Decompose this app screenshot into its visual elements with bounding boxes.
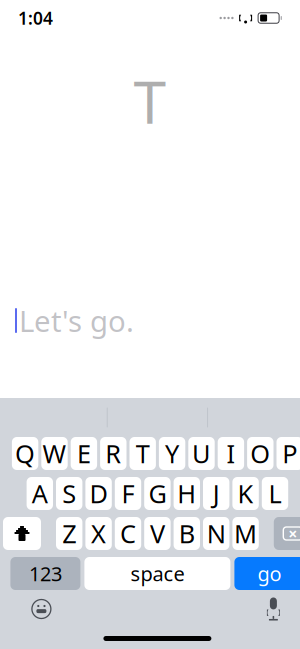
staticText: V bbox=[150, 517, 165, 550]
button[interactable]: M bbox=[232, 517, 259, 550]
button[interactable]: G bbox=[144, 477, 171, 510]
staticText: X bbox=[91, 517, 106, 550]
staticText: × bbox=[288, 523, 297, 544]
staticText: N bbox=[207, 517, 226, 550]
button[interactable]: W bbox=[41, 437, 68, 470]
button[interactable]: N bbox=[203, 517, 229, 550]
button[interactable]: H bbox=[174, 477, 200, 510]
staticText: 123 bbox=[29, 560, 62, 587]
staticText: T bbox=[133, 62, 166, 140]
staticText: A bbox=[32, 477, 48, 510]
button[interactable]: L bbox=[262, 477, 288, 510]
button[interactable]: 123 bbox=[10, 557, 80, 590]
staticText: W bbox=[42, 437, 66, 470]
button[interactable]: E bbox=[71, 437, 97, 470]
button[interactable]: B bbox=[174, 517, 200, 550]
staticText: M bbox=[234, 517, 257, 550]
staticText: T bbox=[136, 437, 150, 470]
button[interactable]: space bbox=[84, 557, 230, 590]
button[interactable]: Emoji bbox=[24, 592, 58, 626]
button[interactable]: go bbox=[234, 557, 300, 590]
staticText: Q bbox=[15, 437, 35, 470]
button[interactable]: D bbox=[85, 477, 112, 510]
staticText: I bbox=[226, 437, 235, 470]
button[interactable]: K bbox=[232, 477, 259, 510]
button[interactable]: C bbox=[115, 517, 141, 550]
button[interactable]: A bbox=[27, 477, 53, 510]
button[interactable]: Z bbox=[56, 517, 82, 550]
staticText: H bbox=[177, 477, 196, 510]
button[interactable]: Q bbox=[12, 437, 38, 470]
staticText: J bbox=[213, 477, 220, 510]
button[interactable]: Shift bbox=[3, 517, 41, 550]
staticText: go bbox=[257, 560, 281, 587]
button[interactable]: O bbox=[247, 437, 273, 470]
staticText: Y bbox=[165, 437, 179, 470]
staticText: 1:04 bbox=[18, 6, 53, 29]
staticText: F bbox=[121, 477, 134, 510]
staticText: G bbox=[148, 477, 166, 510]
staticText: L bbox=[268, 477, 281, 510]
staticText: O bbox=[250, 437, 270, 470]
staticText: C bbox=[120, 517, 136, 550]
button[interactable]: Y bbox=[159, 437, 185, 470]
button[interactable]: Dictation bbox=[256, 592, 290, 626]
button[interactable]: U bbox=[188, 437, 215, 470]
button[interactable]: F bbox=[115, 477, 141, 510]
staticText: D bbox=[90, 477, 108, 510]
staticText: U bbox=[192, 437, 211, 470]
staticText: S bbox=[62, 477, 76, 510]
button[interactable]: T bbox=[129, 437, 156, 470]
staticText: R bbox=[105, 437, 121, 470]
button[interactable]: P bbox=[276, 437, 300, 470]
button[interactable]: S bbox=[56, 477, 82, 510]
staticText: E bbox=[77, 437, 91, 470]
staticText: P bbox=[282, 437, 297, 470]
button[interactable]: X bbox=[85, 517, 112, 550]
staticText: Let's go. bbox=[19, 301, 134, 340]
staticText: Z bbox=[62, 517, 76, 550]
button[interactable]: Delete bbox=[274, 517, 300, 550]
button[interactable]: J bbox=[203, 477, 229, 510]
staticText: B bbox=[179, 517, 195, 550]
staticText: K bbox=[238, 477, 254, 510]
staticText: space bbox=[130, 560, 184, 587]
button[interactable]: V bbox=[144, 517, 171, 550]
button[interactable]: I bbox=[218, 437, 244, 470]
button[interactable]: R bbox=[100, 437, 126, 470]
